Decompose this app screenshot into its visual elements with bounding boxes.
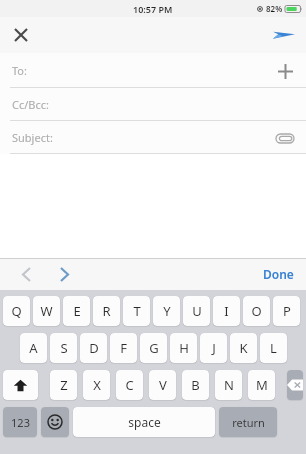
- button[interactable]: Done: [257, 262, 300, 286]
- button[interactable]: I: [213, 296, 240, 326]
- button[interactable]: C: [116, 370, 143, 400]
- button[interactable]: U: [183, 296, 210, 326]
- staticText: G: [149, 339, 159, 357]
- staticText: 123: [11, 415, 30, 430]
- button[interactable]: Shift: [3, 370, 38, 400]
- staticText: B: [191, 376, 200, 394]
- button[interactable]: Add contact: [272, 58, 298, 84]
- staticText: H: [179, 339, 189, 357]
- button[interactable]: L: [260, 333, 287, 363]
- button[interactable]: P: [273, 296, 300, 326]
- staticText: O: [251, 302, 262, 320]
- button[interactable]: J: [200, 333, 227, 363]
- button[interactable]: Send: [268, 19, 300, 51]
- button[interactable]: V: [149, 370, 176, 400]
- staticText: I: [224, 302, 229, 320]
- button[interactable]: Backspace: [287, 370, 303, 400]
- button[interactable]: Z: [50, 370, 77, 400]
- button[interactable]: K: [230, 333, 257, 363]
- staticText: A: [29, 339, 38, 357]
- button[interactable]: 123: [3, 407, 37, 437]
- staticText: V: [159, 376, 167, 394]
- staticText: R: [102, 302, 111, 320]
- button[interactable]: A: [20, 333, 47, 363]
- button[interactable]: Q: [3, 296, 30, 326]
- staticText: space: [128, 414, 161, 430]
- staticText: F: [120, 339, 127, 357]
- button[interactable]: D: [80, 333, 107, 363]
- staticText: return: [232, 415, 265, 430]
- staticText: X: [93, 376, 101, 394]
- staticText: W: [40, 302, 53, 320]
- staticText: S: [60, 339, 68, 357]
- staticText: Cc/Bcc:: [12, 97, 49, 112]
- button[interactable]: Cc/Bcc:: [0, 88, 306, 121]
- staticText: C: [125, 376, 134, 394]
- button[interactable]: Y: [153, 296, 180, 326]
- button[interactable]: Emoji: [41, 407, 69, 437]
- staticText: Done: [263, 266, 294, 282]
- button[interactable]: X: [83, 370, 110, 400]
- button[interactable]: Subject:: [0, 121, 306, 154]
- button[interactable]: space: [73, 407, 215, 437]
- button[interactable]: To:: [0, 53, 306, 88]
- button[interactable]: G: [140, 333, 167, 363]
- staticText: U: [192, 302, 202, 320]
- staticText: D: [89, 339, 99, 357]
- staticText: E: [73, 302, 81, 320]
- button[interactable]: T: [123, 296, 150, 326]
- button[interactable]: S: [50, 333, 77, 363]
- staticText: Z: [60, 376, 68, 394]
- button[interactable]: H: [170, 333, 197, 363]
- staticText: N: [224, 376, 234, 394]
- button[interactable]: M: [248, 370, 275, 400]
- staticText: To:: [12, 63, 27, 78]
- button[interactable]: Attach file: [272, 125, 298, 151]
- staticText: Subject:: [12, 130, 53, 145]
- button[interactable]: R: [93, 296, 120, 326]
- button[interactable]: E: [63, 296, 90, 326]
- staticText: Y: [163, 302, 171, 320]
- staticText: M: [256, 376, 268, 394]
- button[interactable]: F: [110, 333, 137, 363]
- staticText: 82%: [266, 3, 283, 14]
- button[interactable]: B: [182, 370, 209, 400]
- staticText: P: [283, 302, 291, 320]
- button[interactable]: O: [243, 296, 270, 326]
- button[interactable]: W: [33, 296, 60, 326]
- staticText: 10:57 PM: [133, 3, 173, 15]
- staticText: J: [212, 339, 216, 357]
- button[interactable]: Close: [6, 20, 36, 50]
- staticText: Q: [11, 302, 22, 320]
- button[interactable]: Next field: [50, 260, 78, 288]
- button[interactable]: N: [215, 370, 242, 400]
- button[interactable]: return: [219, 407, 277, 437]
- staticText: L: [270, 339, 277, 357]
- staticText: K: [239, 339, 248, 357]
- button[interactable]: Previous field: [12, 260, 40, 288]
- staticText: T: [133, 302, 141, 320]
